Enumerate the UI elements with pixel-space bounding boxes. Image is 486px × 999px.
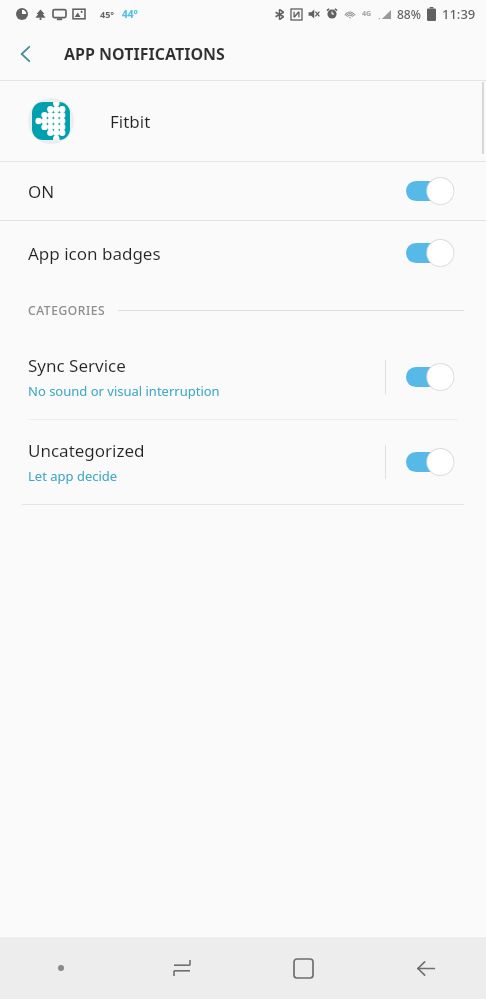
- button[interactable]: Uncategorized: [0, 420, 486, 504]
- staticText: CATEGORIES: [28, 302, 106, 318]
- button[interactable]: Toggle: [406, 239, 456, 267]
- staticText: 4G: [362, 9, 372, 19]
- button[interactable]: Sync Service: [0, 335, 486, 419]
- staticText: Sync Service: [28, 354, 126, 377]
- button[interactable]: Home: [242, 937, 364, 999]
- button[interactable]: Back: [0, 28, 52, 80]
- staticText: 45°: [100, 8, 115, 20]
- staticText: Uncategorized: [28, 439, 145, 462]
- button[interactable]: Back: [364, 937, 486, 999]
- staticText: 88%: [397, 6, 421, 22]
- staticText: Let app decide: [28, 467, 118, 485]
- button[interactable]: Toggle: [406, 363, 456, 391]
- button[interactable]: Recents: [121, 937, 242, 999]
- button[interactable]: Toggle: [406, 448, 456, 476]
- staticText: Fitbit: [110, 110, 151, 133]
- button[interactable]: Fitbit: [0, 81, 486, 161]
- staticText: 11:39: [442, 5, 476, 23]
- button[interactable]: Toggle: [406, 177, 456, 205]
- staticText: App icon badges: [28, 242, 406, 265]
- staticText: ON: [28, 180, 406, 203]
- button[interactable]: App icon badges: [0, 221, 486, 285]
- staticText: APP NOTIFICATIONS: [64, 43, 225, 65]
- staticText: 44°: [122, 7, 138, 21]
- button[interactable]: ON: [0, 162, 486, 220]
- staticText: No sound or visual interruption: [28, 382, 220, 400]
